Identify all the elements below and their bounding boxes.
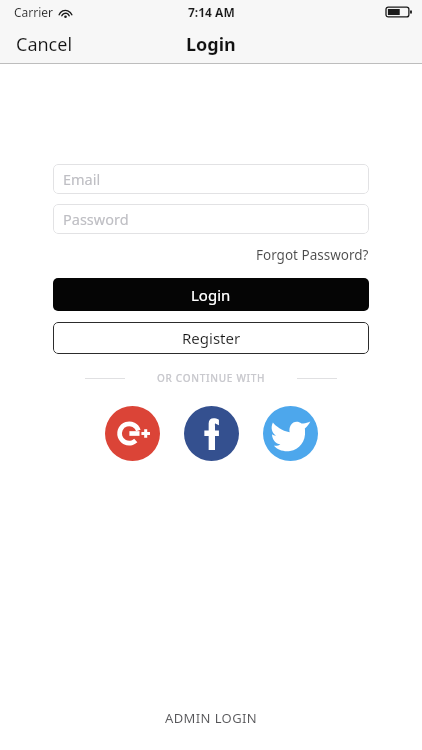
staticText: Login: [191, 285, 231, 305]
staticText: OR CONTINUE WITH: [157, 371, 266, 385]
button[interactable]: Email: [53, 164, 369, 194]
button[interactable]: Register: [53, 322, 369, 354]
staticText: Email: [63, 169, 101, 189]
button[interactable]: Forgot Password?: [256, 243, 369, 267]
staticText: 7:14 AM: [188, 4, 235, 20]
button[interactable]: ADMIN LOGIN: [149, 703, 274, 733]
staticText: Register: [182, 328, 241, 348]
staticText: Forgot Password?: [256, 246, 369, 264]
staticText: Carrier: [14, 4, 54, 20]
button[interactable]: Cancel: [0, 26, 89, 63]
staticText: ADMIN LOGIN: [165, 709, 258, 727]
button[interactable]: Login: [53, 278, 369, 311]
button[interactable]: Sign in with Facebook: [184, 406, 239, 461]
button[interactable]: Sign in with Google: [105, 406, 160, 461]
button[interactable]: Password: [53, 204, 369, 234]
staticText: Cancel: [16, 32, 73, 57]
staticText: Password: [63, 209, 129, 229]
button[interactable]: Sign in with Twitter: [263, 406, 318, 461]
staticText: Login: [186, 32, 236, 57]
